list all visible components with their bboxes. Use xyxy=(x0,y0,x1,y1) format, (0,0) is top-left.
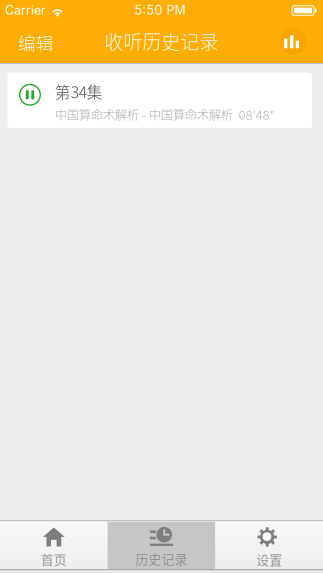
staticText: 5:50 PM xyxy=(134,3,185,18)
staticText: Carrier xyxy=(5,3,46,18)
button[interactable]: 首页 xyxy=(0,522,108,570)
button[interactable]: 第34集 xyxy=(7,73,312,128)
staticText: 中国算命术解析 - 中国算命术解析 08'48" xyxy=(55,105,275,123)
staticText: 收听历史记录 xyxy=(104,27,218,55)
button[interactable]: 编辑 xyxy=(0,20,66,62)
button[interactable]: 历史记录 xyxy=(108,522,215,570)
staticText: 编辑 xyxy=(18,30,54,55)
staticText: 历史记录 xyxy=(135,549,187,568)
staticText: 设置 xyxy=(256,550,282,568)
staticText: 首页 xyxy=(41,550,67,568)
button[interactable]: 统计图表 xyxy=(278,20,323,62)
staticText: 第34集 xyxy=(55,80,103,103)
button[interactable]: 设置 xyxy=(215,522,323,570)
